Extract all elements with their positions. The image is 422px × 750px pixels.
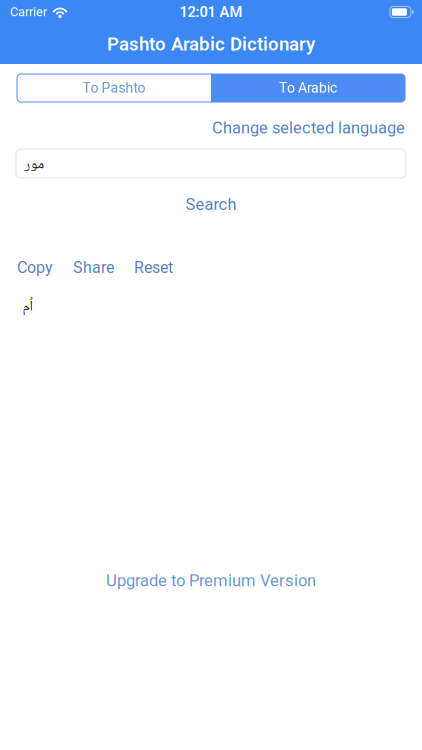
button[interactable]: مور [16,149,406,178]
staticText: Upgrade to Premium Version [106,571,316,590]
staticText: To Pashto [82,80,145,96]
button[interactable]: Copy [17,258,53,277]
button[interactable]: Change selected language [212,118,405,138]
staticText: Reset [134,258,173,277]
button[interactable]: Search [0,197,422,212]
button[interactable]: Share [73,258,114,277]
staticText: Copy [17,258,53,277]
staticText: To Arabic [279,80,337,96]
button[interactable]: To Arabic [211,74,405,102]
staticText: 12:01 AM [179,3,242,21]
staticText: أم [22,295,32,320]
staticText: Share [73,258,114,277]
button[interactable]: To Pashto [17,74,211,102]
staticText: مور [24,152,44,177]
button[interactable]: Reset [134,258,173,277]
staticText: Pashto Arabic Dictionary [107,33,315,55]
staticText: Search [185,195,236,214]
staticText: Change selected language [212,118,405,138]
staticText: Carrier [10,5,47,19]
button[interactable]: Upgrade to Premium Version [0,573,422,588]
